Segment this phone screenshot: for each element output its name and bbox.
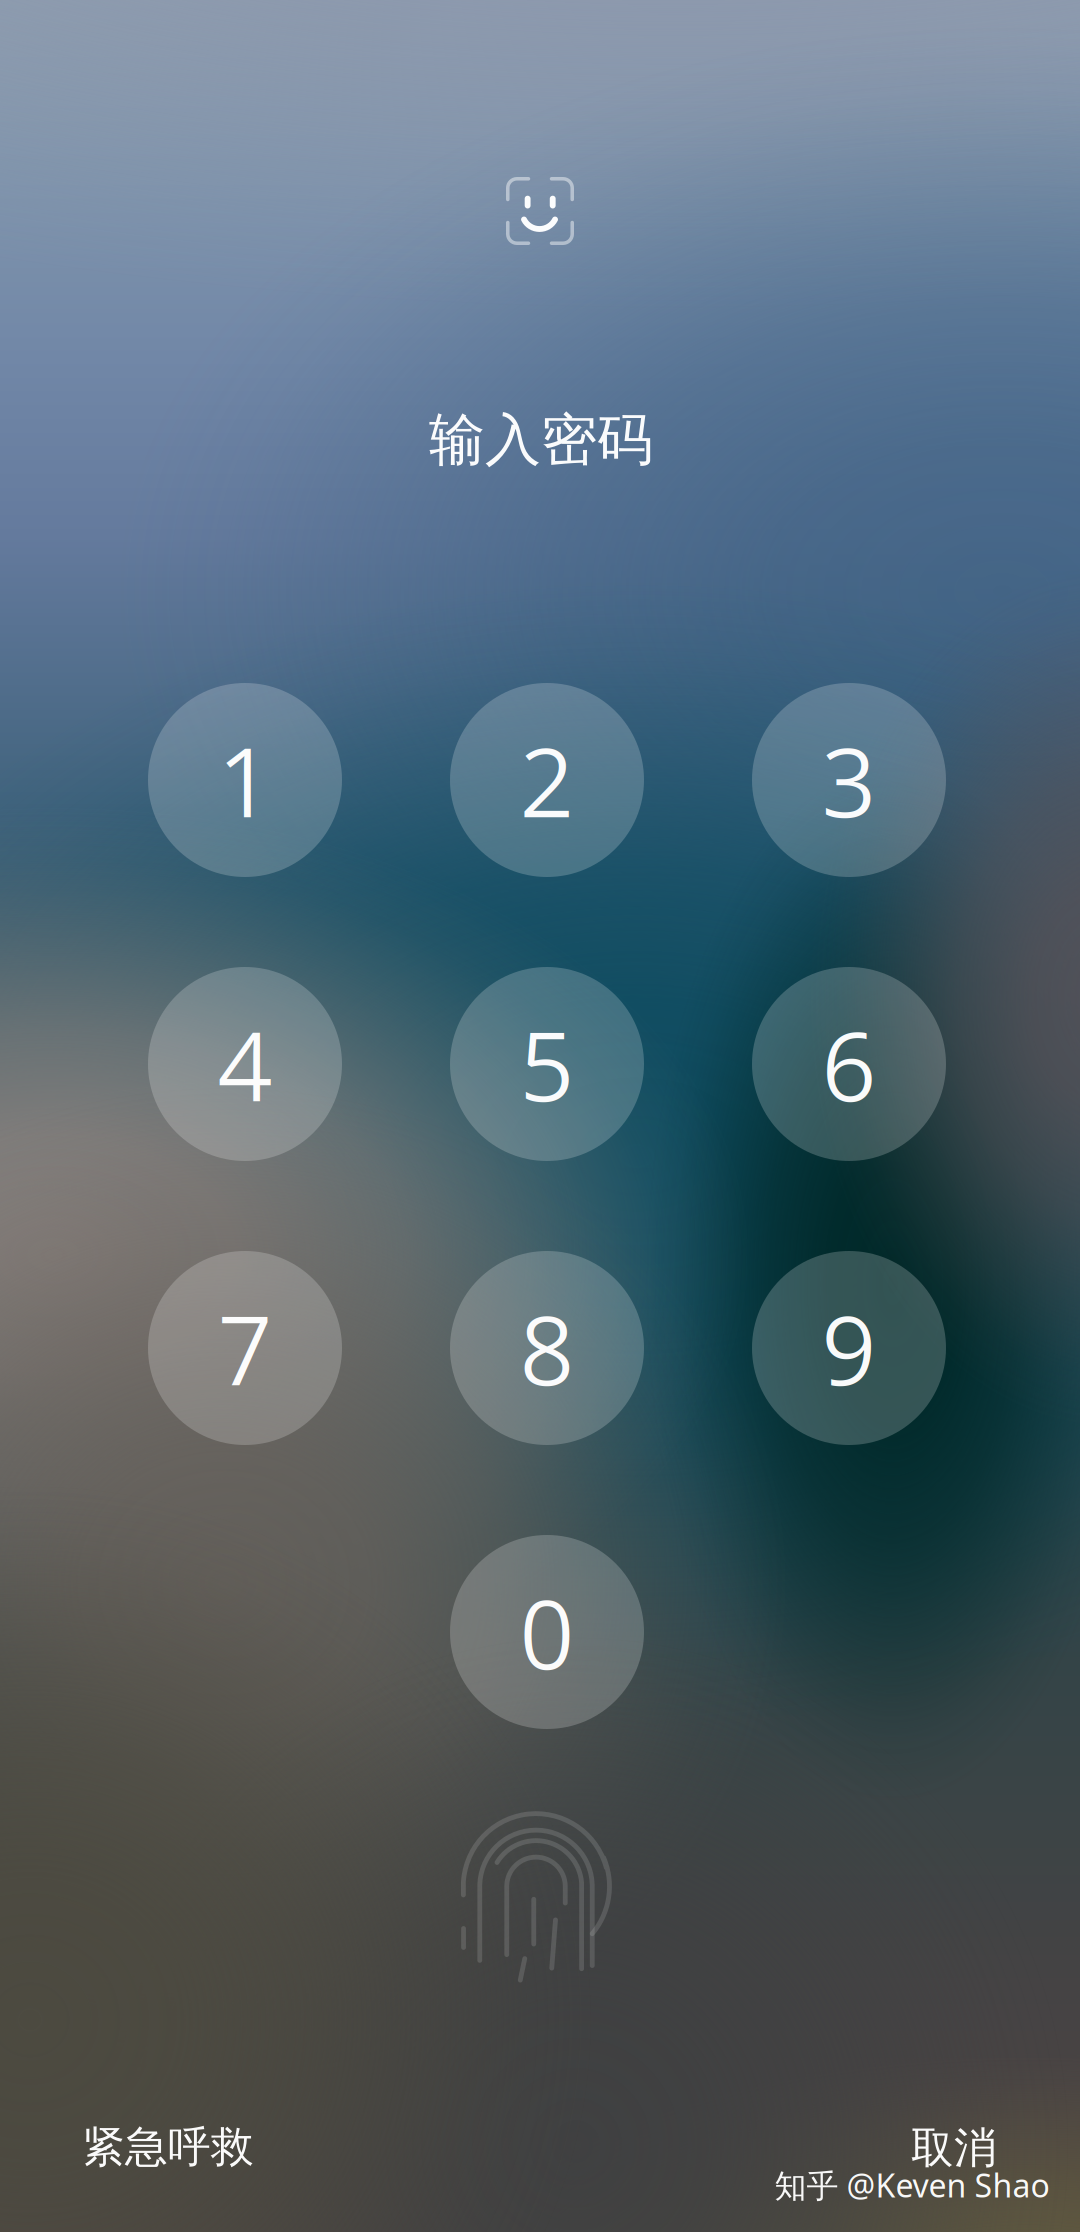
staticText: 3 (821, 715, 876, 845)
staticText: 9 (821, 1283, 876, 1413)
staticText: 7 (217, 1283, 272, 1413)
staticText: 2 (519, 715, 574, 845)
staticText: 输入密码 (429, 406, 653, 474)
staticText: 取消 (911, 2122, 997, 2174)
button[interactable]: 1 (148, 683, 342, 877)
staticText: 0 (519, 1567, 574, 1697)
button[interactable]: 紧急呼救 (82, 2121, 254, 2173)
button[interactable]: 2 (450, 683, 644, 877)
button[interactable]: 6 (752, 967, 946, 1161)
staticText: 4 (217, 999, 272, 1129)
button[interactable]: 8 (450, 1251, 644, 1445)
staticText: 8 (519, 1283, 574, 1413)
button[interactable]: 9 (752, 1251, 946, 1445)
staticText: 紧急呼救 (82, 2121, 254, 2173)
button[interactable]: 5 (450, 967, 644, 1161)
button[interactable]: 0 (450, 1535, 644, 1729)
staticText: 5 (519, 999, 574, 1129)
button[interactable]: 取消 (911, 2122, 997, 2174)
button[interactable]: 3 (752, 683, 946, 877)
staticText: 知乎 @Keven Shao (774, 2164, 1049, 2206)
staticText: 6 (821, 999, 876, 1129)
button[interactable]: 4 (148, 967, 342, 1161)
button[interactable]: 7 (148, 1251, 342, 1445)
staticText: 1 (217, 715, 272, 845)
